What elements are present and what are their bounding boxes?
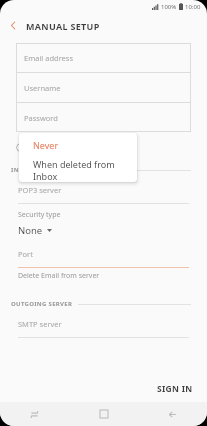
button[interactable]: POP3 server: [0, 177, 207, 204]
staticText: SMTP server: [18, 319, 62, 329]
staticText: Delete Email from server: [18, 271, 100, 281]
staticText: None: [18, 224, 43, 237]
staticText: INCOMING SERVER: [11, 166, 72, 174]
button[interactable]: Email address: [16, 43, 191, 72]
button[interactable]: Password: [16, 103, 191, 132]
button[interactable]: Show password: [0, 140, 207, 154]
staticText: SIGN IN: [157, 383, 193, 395]
staticText: Email address: [24, 53, 74, 63]
staticText: OUTGOING SERVER: [11, 300, 73, 308]
staticText: Username: [24, 83, 61, 93]
button[interactable]: SMTP server: [0, 311, 207, 338]
staticText: POP3 server: [18, 185, 62, 195]
button[interactable]: Security type: [0, 204, 207, 241]
button[interactable]: Recents: [0, 402, 69, 426]
button[interactable]: When deleted from Inbox: [19, 157, 137, 182]
button[interactable]: Home: [69, 402, 138, 426]
staticText: 100%: [161, 3, 177, 11]
staticText: Show password: [32, 142, 91, 153]
button[interactable]: Back: [138, 402, 207, 426]
staticText: Port: [18, 249, 33, 259]
button[interactable]: Port: [0, 241, 207, 268]
staticText: Security type: [18, 210, 61, 220]
button[interactable]: Back: [0, 13, 26, 38]
staticText: MANUAL SETUP: [26, 20, 100, 32]
staticText: Password: [24, 113, 58, 123]
button[interactable]: Never: [19, 133, 137, 157]
staticText: 10:00: [185, 3, 201, 11]
staticText: When deleted from Inbox: [33, 158, 137, 182]
button[interactable]: Username: [16, 73, 191, 102]
staticText: Never: [33, 139, 59, 151]
button[interactable]: SIGN IN: [143, 378, 207, 400]
